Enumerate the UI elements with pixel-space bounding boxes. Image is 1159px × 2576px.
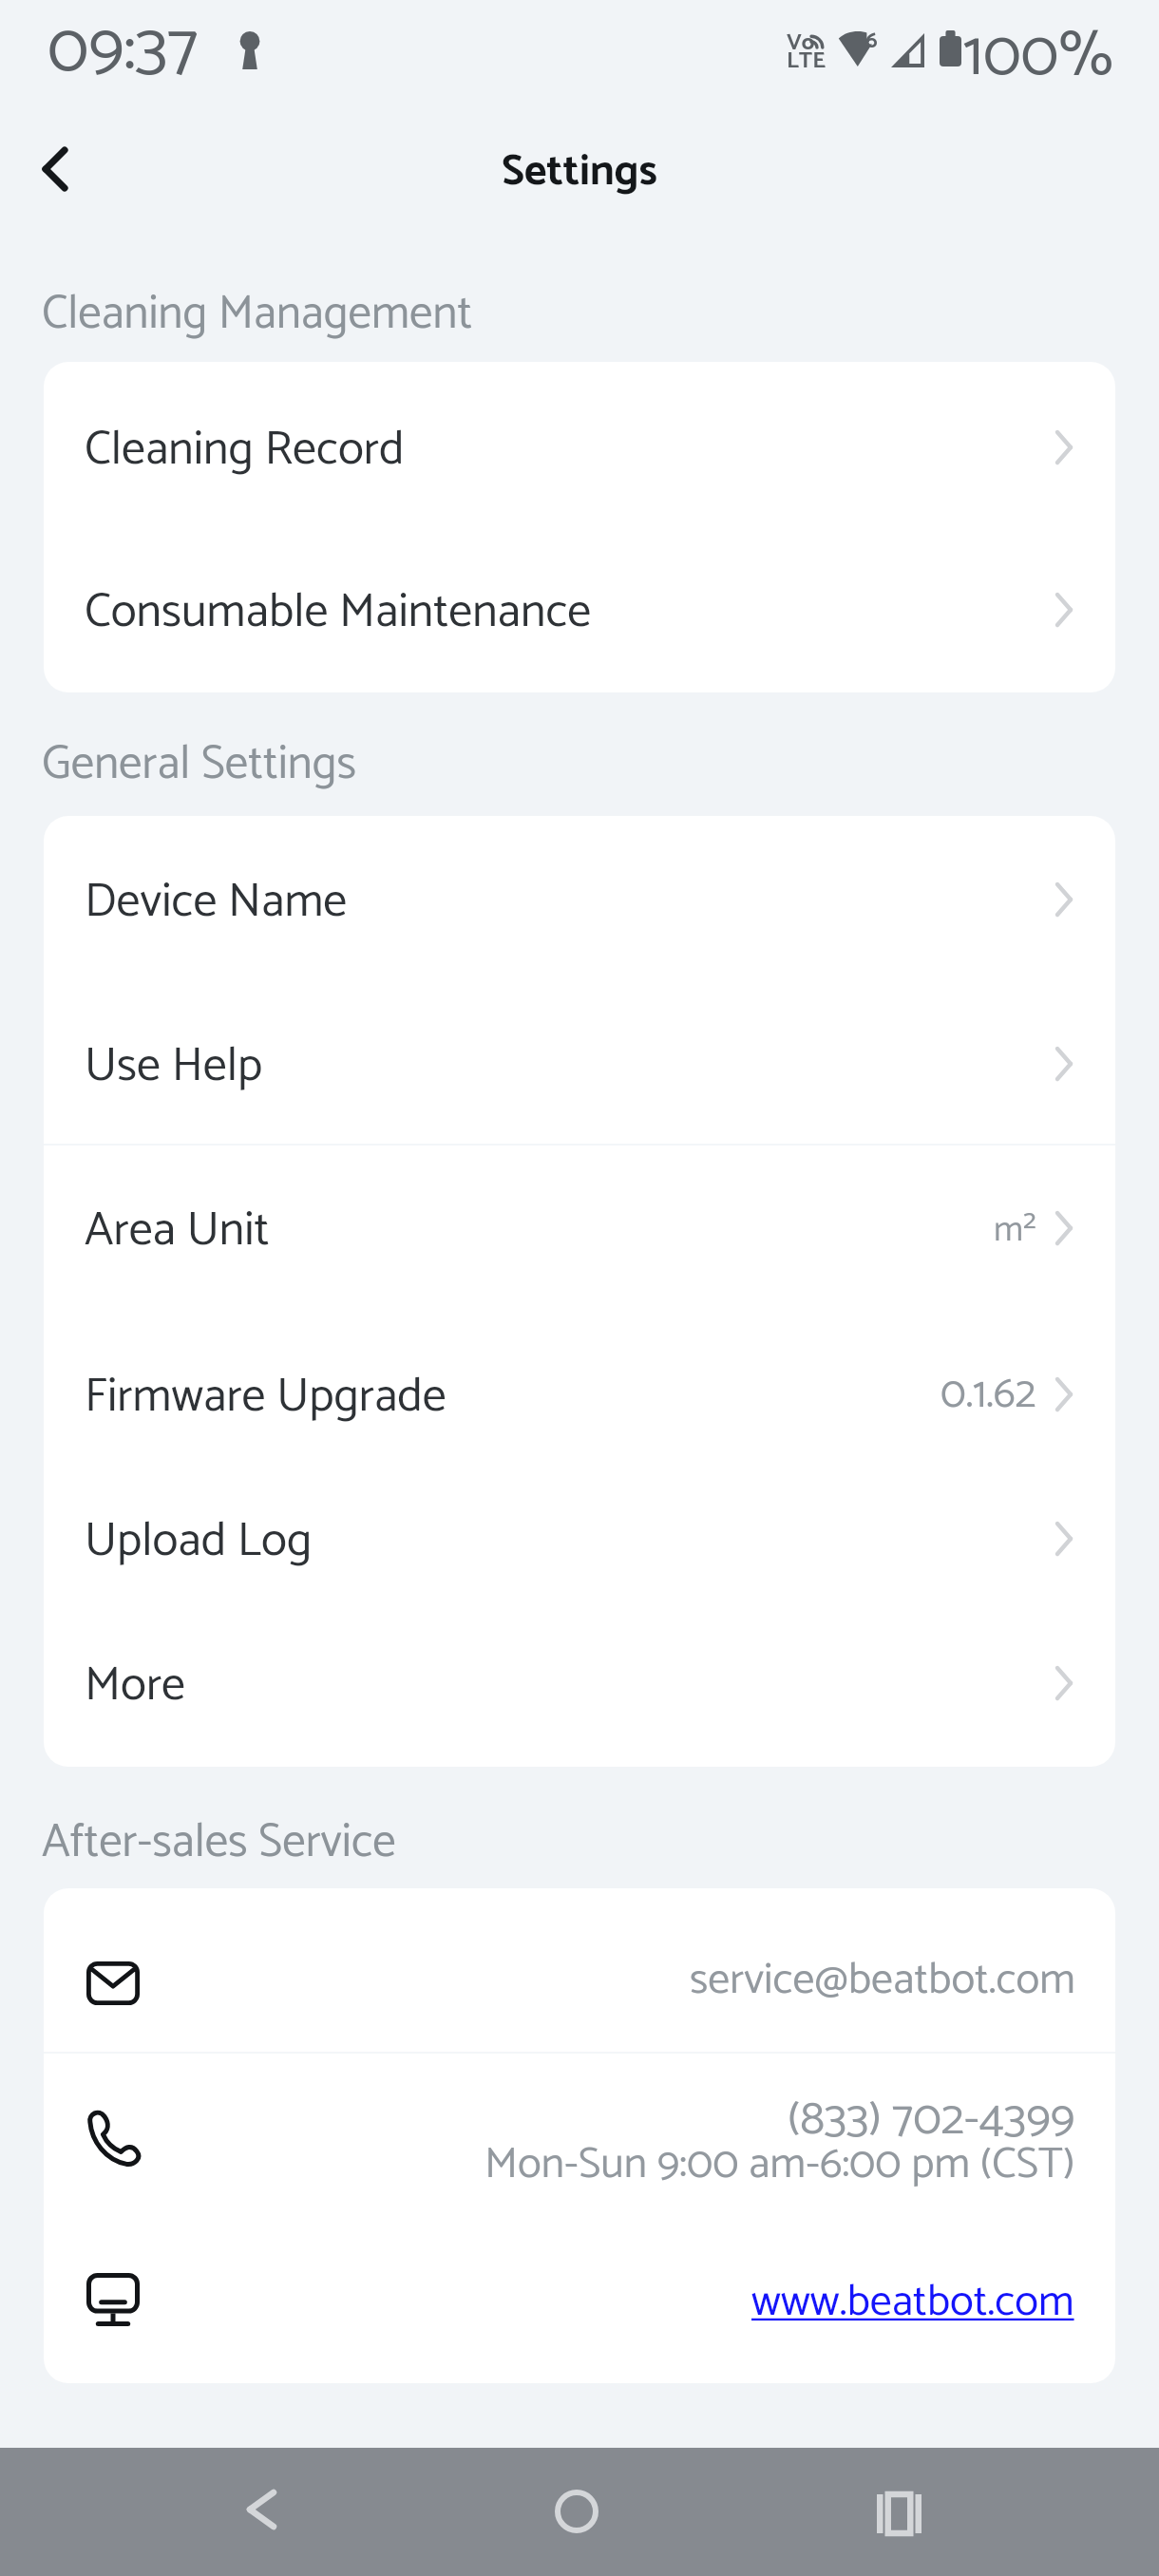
button[interactable]: Back <box>199 2448 323 2571</box>
staticText: Settings <box>502 137 657 208</box>
button[interactable]: Device Name <box>44 816 1115 989</box>
staticText: Cleaning Record <box>85 411 405 489</box>
staticText: More <box>85 1647 186 1725</box>
button[interactable]: service@beatbot.com <box>44 1888 1115 2052</box>
staticText: Consumable Maintenance <box>85 574 592 652</box>
button[interactable]: Back <box>9 122 101 213</box>
staticText: (833) 702-4399 <box>788 2081 1075 2159</box>
button[interactable]: (833) 702-4399 <box>44 2054 1115 2219</box>
staticText: 09:37 <box>47 0 199 108</box>
button[interactable]: Cleaning Record <box>44 362 1115 535</box>
staticText: 100% <box>963 4 1113 108</box>
staticText: Mon-Sun 9:00 am-6:00 pm (CST) <box>484 2129 1075 2200</box>
button[interactable]: Consumable Maintenance <box>44 535 1115 692</box>
button[interactable]: Recent apps <box>837 2452 960 2575</box>
staticText: Upload Log <box>85 1503 313 1581</box>
staticText: 0.1.62 <box>940 1359 1036 1430</box>
staticText: Cleaning Management <box>42 276 473 352</box>
button[interactable]: More <box>44 1605 1115 1767</box>
staticText: LTE <box>787 43 826 80</box>
button[interactable]: Upload Log <box>44 1475 1115 1605</box>
button[interactable]: www.beatbot.com <box>44 2219 1115 2383</box>
staticText: m² <box>994 1201 1036 1260</box>
staticText: 6 <box>865 23 878 60</box>
button[interactable]: Firmware Upgrade <box>44 1315 1115 1475</box>
staticText: www.beatbot.com <box>751 2266 1074 2338</box>
button[interactable]: Home <box>515 2450 638 2573</box>
staticText: General Settings <box>42 727 356 803</box>
button[interactable]: Area Unit <box>44 1146 1115 1315</box>
staticText: After-sales Service <box>42 1805 396 1881</box>
staticText: Vo <box>787 25 815 62</box>
button[interactable]: Use Help <box>44 989 1115 1144</box>
staticText: Use Help <box>85 1028 263 1106</box>
staticText: Firmware Upgrade <box>85 1358 446 1436</box>
staticText: Device Name <box>85 863 348 941</box>
staticText: service@beatbot.com <box>690 1944 1075 2016</box>
staticText: Area Unit <box>85 1192 270 1270</box>
